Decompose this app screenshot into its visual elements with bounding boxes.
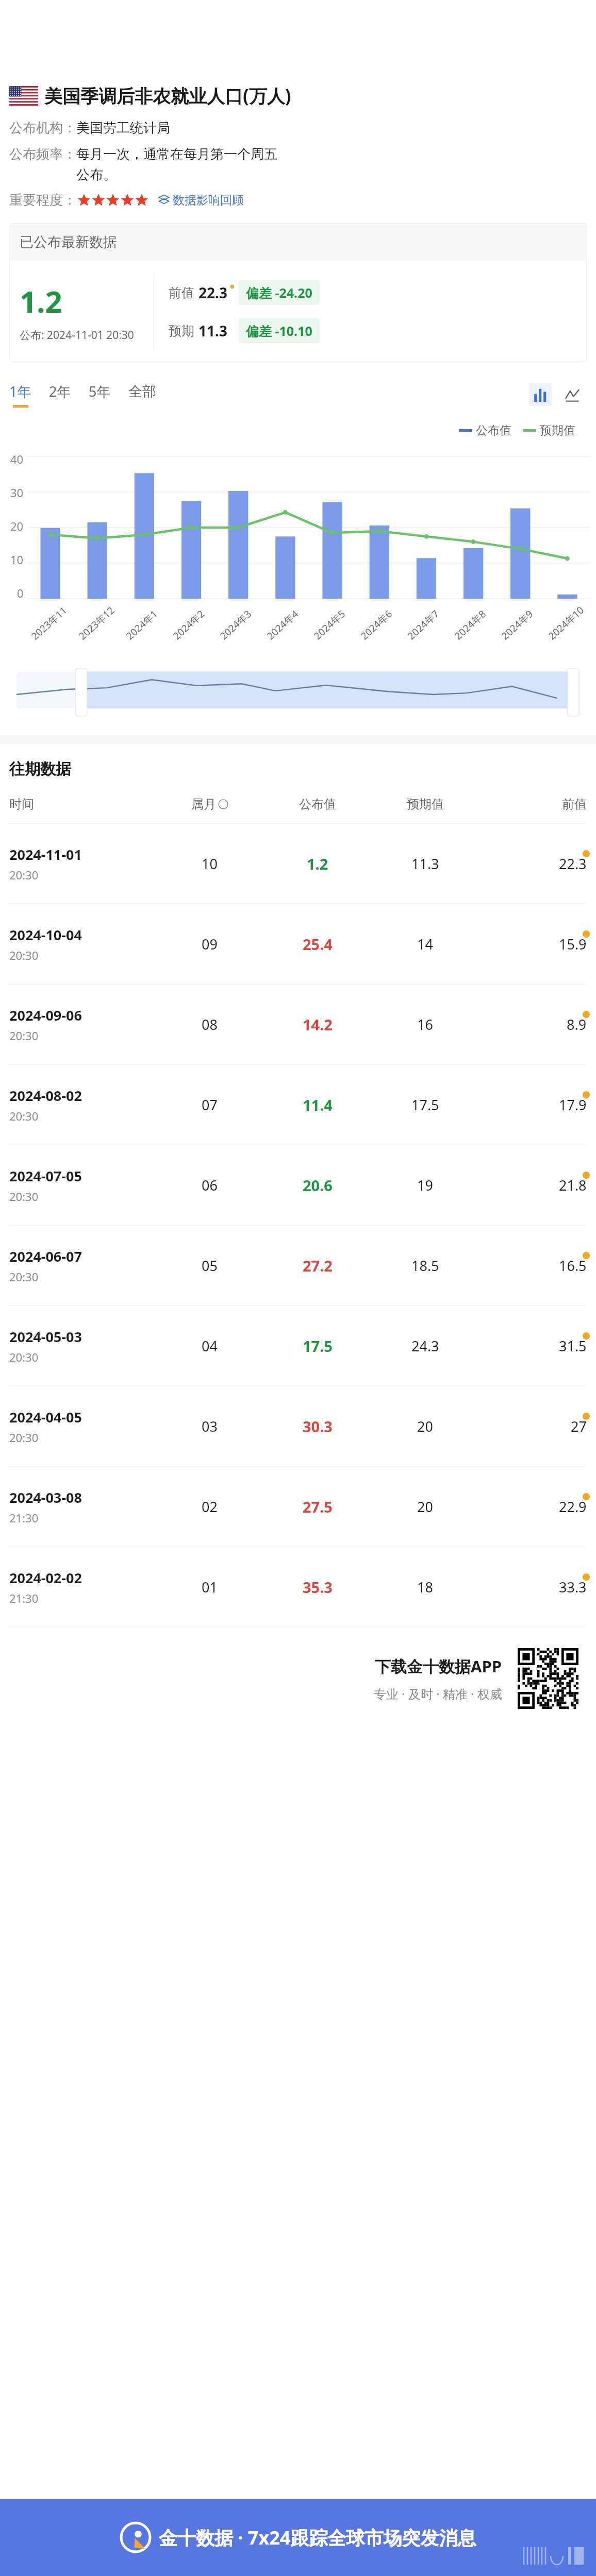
staticText: 11.4 [303, 1095, 333, 1115]
staticText: 18.5 [411, 1256, 439, 1275]
button[interactable]: 已公布最新数据 [9, 223, 587, 362]
button[interactable]: Bar chart [529, 383, 552, 406]
staticText: 2024-04-05 [9, 1408, 82, 1427]
staticText: 20:30 [9, 1108, 39, 1124]
staticText: 公布: 2024-11-01 20:30 [20, 328, 134, 343]
staticText: 18 [417, 1578, 433, 1597]
staticText: 01 [202, 1578, 218, 1597]
staticText: 05 [202, 1256, 218, 1275]
staticText: 2024-06-07 [9, 1247, 82, 1266]
button[interactable]: Line chart [561, 383, 584, 406]
staticText: 35.3 [303, 1577, 333, 1597]
staticText: 19 [417, 1176, 433, 1195]
staticText: 11.3 [411, 854, 439, 873]
staticText: 往期数据 [9, 759, 71, 779]
staticText: 2024-05-03 [9, 1327, 82, 1346]
staticText: 2024年6月 [358, 601, 402, 643]
staticText: 14.2 [303, 1014, 333, 1035]
staticText: 公布机构： [9, 120, 76, 137]
staticText: 美国季调后非农就业人口(万人) [44, 83, 291, 108]
staticText: 21.8 [559, 1176, 587, 1195]
staticText: 2024年2月 [170, 601, 214, 643]
staticText: 2023年11月 [28, 601, 73, 643]
staticText: 2024-10-04 [9, 925, 82, 944]
button[interactable]: 2024-05-03 [9, 1306, 587, 1386]
staticText: 27.5 [303, 1497, 333, 1517]
staticText: 20:30 [9, 1269, 39, 1284]
staticText: 09 [202, 935, 218, 954]
button[interactable]: 1年 [9, 382, 49, 408]
button[interactable]: 2024-06-07 [9, 1226, 587, 1306]
staticText: 20:30 [9, 1028, 39, 1043]
staticText: 前值 [562, 796, 587, 812]
button[interactable]: 2024-08-02 [9, 1065, 587, 1145]
staticText: 公布值 [476, 423, 511, 438]
staticText: 20:30 [9, 1189, 39, 1204]
staticText: 2024年4月 [264, 601, 308, 643]
button[interactable]: 2024-03-08 [9, 1467, 587, 1547]
button[interactable]: 全部 [128, 383, 174, 407]
staticText: 2024-02-02 [9, 1568, 82, 1587]
button[interactable]: 5年 [89, 382, 128, 408]
button[interactable]: 2024-02-02 [9, 1547, 587, 1627]
staticText: 20:30 [9, 947, 39, 963]
staticText: 1.2 [307, 854, 328, 874]
staticText: 专业 · 及时 · 精准 · 权威 [374, 1685, 502, 1702]
staticText: 22.3 [198, 283, 227, 302]
staticText: 2024-03-08 [9, 1488, 82, 1507]
button[interactable]: 2024-04-05 [9, 1386, 587, 1466]
staticText: 数据影响回顾 [173, 193, 244, 208]
staticText: 11.3 [198, 321, 227, 341]
staticText: 21:30 [9, 1590, 39, 1606]
staticText: 金十数据 · 7x24跟踪全球市场突发消息 [159, 2525, 476, 2550]
staticText: 30 [10, 485, 24, 500]
staticText: 22.3 [559, 854, 587, 873]
button[interactable]: 2年 [49, 382, 89, 408]
staticText: 2024年7月 [405, 601, 449, 643]
staticText: 16 [417, 1015, 433, 1034]
staticText: 21:30 [9, 1510, 39, 1526]
staticText: 04 [202, 1336, 218, 1355]
staticText: 美国劳工统计局 [76, 120, 170, 137]
staticText: 公布值 [299, 796, 336, 812]
staticText: 2024年9月 [499, 601, 542, 643]
staticText: 20:30 [9, 1349, 39, 1365]
button[interactable]: 2024-09-06 [9, 985, 587, 1064]
staticText: 20:30 [9, 867, 39, 883]
staticText: 07 [202, 1095, 218, 1114]
staticText: 5年 [89, 382, 111, 401]
staticText: 预期值 [407, 796, 444, 812]
staticText: 前值 [169, 285, 194, 301]
staticText: 20 [417, 1417, 433, 1436]
button[interactable]: 数据影响回顾 [158, 193, 244, 208]
staticText: 预期 [169, 323, 194, 339]
staticText: 2024年8月 [452, 601, 495, 643]
button[interactable]: 2024-10-04 [9, 904, 587, 984]
staticText: 1.2 [20, 281, 62, 321]
staticText: 25.4 [303, 934, 333, 954]
staticText: 属月 [191, 796, 216, 812]
staticText: 22.9 [559, 1497, 587, 1516]
staticText: 30.3 [303, 1416, 333, 1436]
staticText: 2024年3月 [217, 601, 261, 643]
staticText: 2024-07-05 [9, 1166, 82, 1185]
staticText: 31.5 [559, 1336, 587, 1355]
staticText: 2024-09-06 [9, 1006, 82, 1025]
staticText: 重要程度： [9, 192, 76, 209]
staticText: 时间 [9, 796, 34, 812]
staticText: 33.3 [559, 1578, 587, 1597]
staticText: 2年 [49, 382, 71, 401]
staticText: 8.9 [567, 1015, 587, 1034]
staticText: 偏差 -10.10 [246, 322, 312, 340]
staticText: 10 [10, 552, 24, 567]
staticText: 27.2 [303, 1256, 333, 1276]
staticText: 10 [202, 854, 218, 873]
staticText: 预期值 [540, 423, 575, 438]
button[interactable]: 2024-11-01 [9, 824, 587, 904]
staticText: 06 [202, 1176, 218, 1195]
staticText: 08 [202, 1015, 218, 1034]
button[interactable]: 金十数据 · 7x24跟踪全球市场突发消息 [0, 2499, 596, 2576]
staticText: 20 [10, 518, 24, 534]
button[interactable]: 2024-07-05 [9, 1145, 587, 1225]
staticText: 03 [202, 1417, 218, 1436]
